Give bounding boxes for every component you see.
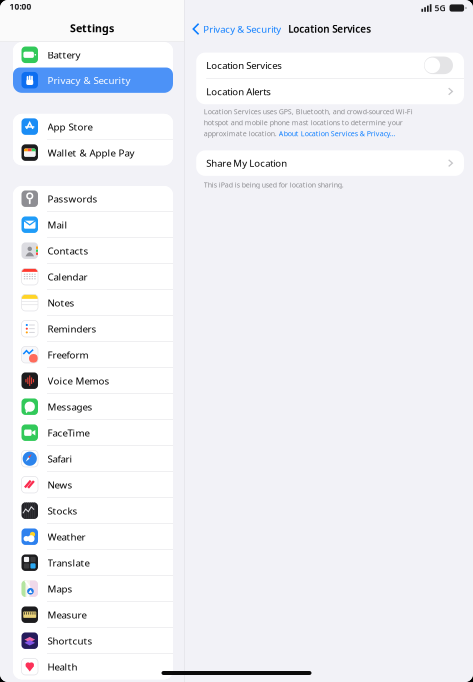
staticText: App Store xyxy=(47,120,92,133)
staticText: Location Alerts xyxy=(206,85,271,98)
button[interactable]: Messages xyxy=(13,394,173,419)
button[interactable]: Health xyxy=(13,654,173,679)
staticText: Maps xyxy=(47,582,72,595)
staticText: Shortcuts xyxy=(47,634,92,647)
staticText: Messages xyxy=(47,400,92,413)
staticText: Freeform xyxy=(47,348,88,361)
button[interactable]: Location Alerts xyxy=(196,79,464,104)
button[interactable]: Reminders xyxy=(13,316,173,341)
staticText: Location Services xyxy=(288,22,371,36)
staticText: Stocks xyxy=(47,504,77,517)
button[interactable]: Freeform xyxy=(13,342,173,367)
button[interactable]: Measure xyxy=(13,602,173,627)
staticText: News xyxy=(47,478,72,491)
staticText: Passwords xyxy=(47,192,97,205)
staticText: Location Services xyxy=(206,59,282,72)
button[interactable]: Privacy & Security xyxy=(13,67,173,93)
staticText: Measure xyxy=(47,608,86,621)
button[interactable]: Passwords xyxy=(13,186,173,211)
staticText: Battery xyxy=(47,48,80,61)
staticText: Calendar xyxy=(47,270,87,283)
staticText: Safari xyxy=(47,452,72,465)
button[interactable]: Safari xyxy=(13,446,173,471)
button[interactable]: Weather xyxy=(13,524,173,549)
staticText: Privacy & Security xyxy=(47,74,130,87)
staticText: Mail xyxy=(47,218,67,231)
button[interactable]: Notes xyxy=(13,290,173,315)
button[interactable]: Location Services xyxy=(196,53,464,78)
staticText: Contacts xyxy=(47,244,88,257)
staticText: Share My Location xyxy=(206,157,287,170)
staticText: This iPad is being used for location sha… xyxy=(204,180,344,189)
staticText: Voice Memos xyxy=(47,374,109,387)
button[interactable]: FaceTime xyxy=(13,420,173,445)
staticText: Translate xyxy=(47,556,89,569)
staticText: Reminders xyxy=(47,322,96,335)
button[interactable]: Mail xyxy=(13,212,173,237)
staticText: Weather xyxy=(47,530,85,543)
button[interactable]: Privacy & Security xyxy=(185,16,283,42)
staticText: FaceTime xyxy=(47,426,89,439)
staticText: Wallet & Apple Pay xyxy=(47,146,134,159)
staticText: Settings xyxy=(70,21,114,35)
button[interactable]: Calendar xyxy=(13,264,173,289)
staticText: Health xyxy=(47,660,77,673)
button[interactable]: Shortcuts xyxy=(13,628,173,653)
button[interactable]: Battery xyxy=(13,42,173,67)
button[interactable]: Share My Location xyxy=(196,150,464,176)
button[interactable]: Wallet & Apple Pay xyxy=(13,140,173,165)
button[interactable]: Voice Memos xyxy=(13,368,173,393)
staticText: Notes xyxy=(47,296,74,309)
button[interactable]: Contacts xyxy=(13,238,173,263)
staticText: Privacy & Security xyxy=(203,23,281,35)
button[interactable]: Translate xyxy=(13,550,173,575)
button[interactable]: Maps xyxy=(13,576,173,601)
staticText: About Location Services & Privacy… xyxy=(279,129,396,138)
staticText: 10:00 xyxy=(9,1,31,12)
button[interactable]: App Store xyxy=(13,114,173,139)
button[interactable]: News xyxy=(13,472,173,497)
staticText: Location Services uses GPS, Bluetooth, a… xyxy=(204,107,413,116)
staticText: hotspot and mobile phone mast locations … xyxy=(204,118,403,127)
staticText: 5G xyxy=(434,2,445,14)
staticText: approximate location. xyxy=(204,129,279,138)
button[interactable]: Stocks xyxy=(13,498,173,523)
